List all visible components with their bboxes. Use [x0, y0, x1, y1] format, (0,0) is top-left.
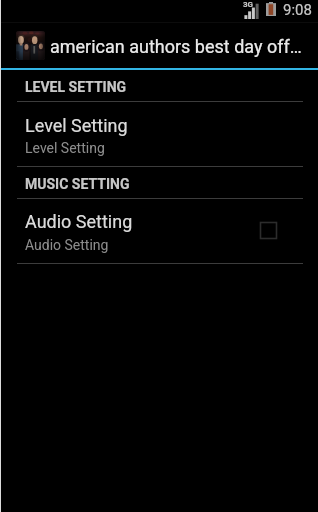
staticText: 3G — [243, 0, 254, 9]
staticText: Level Setting — [25, 140, 105, 156]
staticText: Level Setting — [25, 115, 128, 136]
staticText: american authors best day off… — [50, 36, 303, 57]
staticText: MUSIC SETTING — [25, 176, 130, 192]
staticText: 9:08 — [283, 1, 312, 19]
button[interactable]: american authors best day off… — [0, 23, 318, 68]
staticText: LEVEL SETTING — [25, 79, 127, 95]
staticText: Audio Setting — [25, 211, 133, 232]
button[interactable]: Audio Setting checkbox — [248, 210, 289, 250]
button[interactable] — [0, 102, 318, 166]
button[interactable] — [0, 199, 318, 263]
staticText: Audio Setting — [25, 237, 109, 253]
